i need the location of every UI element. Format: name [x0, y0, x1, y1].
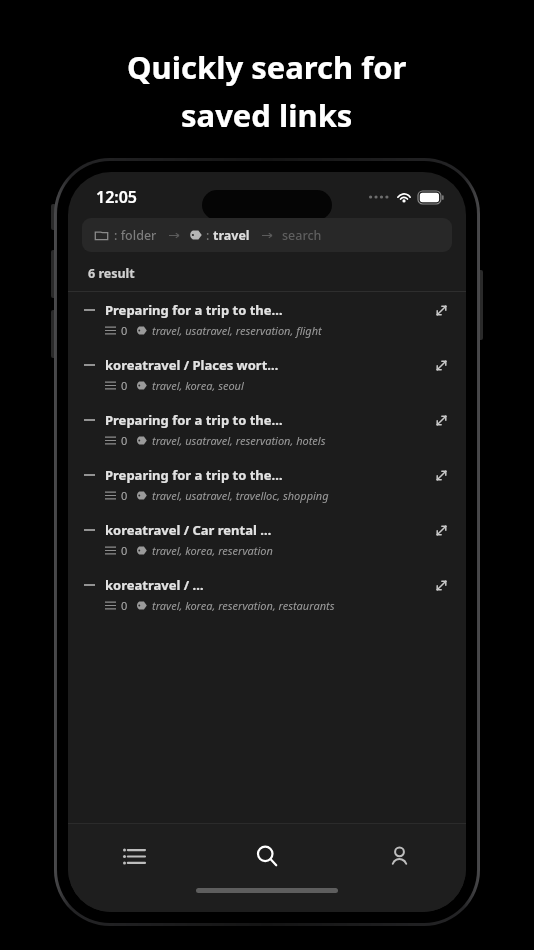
staticText: travel, korea, seoul: [152, 378, 244, 393]
button[interactable]: Expand: [432, 356, 450, 374]
staticText: koreatravel / Places wort…: [105, 356, 432, 374]
staticText: travel, usatravel, reservation, hotels: [152, 433, 326, 448]
staticText: 0: [121, 598, 128, 613]
staticText: :: [206, 227, 213, 244]
staticText: search: [282, 227, 322, 244]
staticText: 6 result: [88, 265, 135, 282]
button[interactable]: Preparing for a trip to the…: [68, 402, 466, 457]
staticText: koreatravel / …: [105, 576, 432, 594]
button[interactable]: Expand: [432, 521, 450, 539]
staticText: : folder: [114, 227, 157, 244]
button[interactable]: List: [68, 824, 200, 888]
button[interactable]: Expand: [432, 466, 450, 484]
staticText: 0: [121, 543, 128, 558]
button[interactable]: Expand: [432, 411, 450, 429]
staticText: 0: [121, 488, 128, 503]
staticText: travel: [213, 227, 250, 244]
staticText: 12:05: [96, 186, 138, 208]
staticText: travel, usatravel, reservation, flight: [152, 323, 322, 338]
staticText: Preparing for a trip to the…: [105, 466, 432, 484]
button[interactable]: Expand: [432, 301, 450, 319]
button[interactable]: Profile: [333, 824, 466, 888]
button[interactable]: Expand: [432, 576, 450, 594]
staticText: Preparing for a trip to the…: [105, 301, 432, 319]
staticText: 0: [121, 378, 128, 393]
button[interactable]: koreatravel / …: [68, 567, 466, 622]
staticText: Preparing for a trip to the…: [105, 411, 432, 429]
button[interactable]: Preparing for a trip to the…: [68, 457, 466, 512]
staticText: travel, usatravel, travelloc, shopping: [152, 488, 329, 503]
staticText: travel, korea, reservation, restaurants: [152, 598, 335, 613]
button[interactable]: koreatravel / Places wort…: [68, 347, 466, 402]
button[interactable]: : folder: [82, 218, 452, 252]
staticText: travel, korea, reservation: [152, 543, 273, 558]
button[interactable]: Preparing for a trip to the…: [68, 292, 466, 347]
button[interactable]: Search: [200, 824, 333, 888]
staticText: koreatravel / Car rental …: [105, 521, 432, 539]
staticText: 0: [121, 323, 128, 338]
staticText: 0: [121, 433, 128, 448]
staticText: saved links: [181, 94, 353, 136]
staticText: Quickly search for: [127, 46, 407, 88]
button[interactable]: koreatravel / Car rental …: [68, 512, 466, 567]
